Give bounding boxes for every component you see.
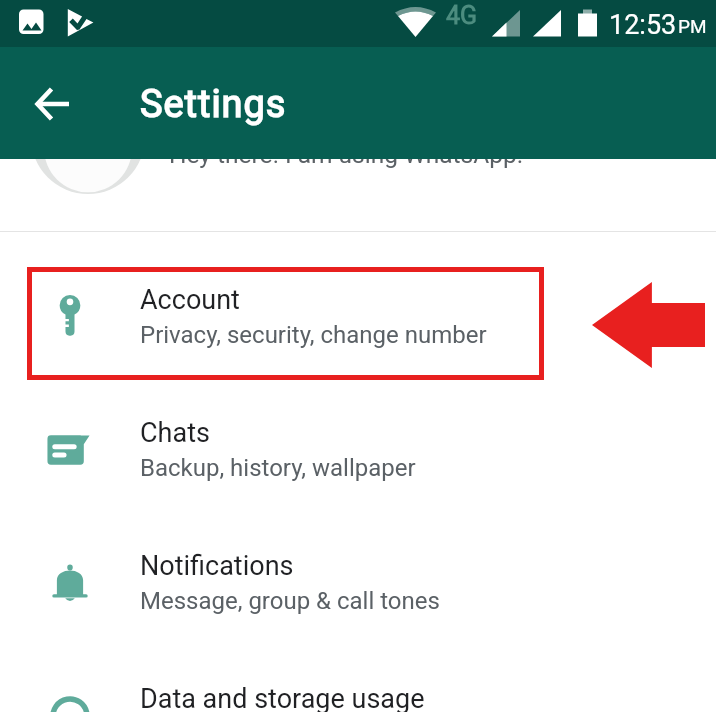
staticText: PM xyxy=(678,15,707,37)
staticText: Chats xyxy=(140,417,210,449)
staticText: Settings xyxy=(140,82,287,127)
button[interactable]: Notifications xyxy=(0,516,716,649)
button[interactable]: Account xyxy=(0,250,716,383)
button[interactable]: Back xyxy=(21,72,85,136)
staticText: Account xyxy=(140,284,240,316)
staticText: Backup, history, wallpaper xyxy=(140,454,416,482)
staticText: 12:53 xyxy=(609,9,677,41)
staticText: Privacy, security, change number xyxy=(140,321,487,349)
button[interactable]: Data and storage usage xyxy=(0,649,716,712)
staticText: Data and storage usage xyxy=(140,683,425,712)
staticText: Notifications xyxy=(140,550,294,582)
button[interactable]: Chats xyxy=(0,383,716,516)
staticText: Message, group & call tones xyxy=(140,587,440,615)
staticText: Hey there! I am using WhatsApp. xyxy=(169,159,524,169)
button[interactable]: Hey there! I am using WhatsApp. xyxy=(0,159,716,231)
staticText: 4G xyxy=(446,1,478,30)
